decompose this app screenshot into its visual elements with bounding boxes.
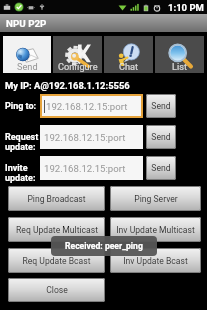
button[interactable]: Ping Server	[110, 186, 201, 211]
button[interactable]: Inv Update Multicast	[110, 217, 201, 242]
staticText: Chat	[119, 61, 139, 72]
staticText: Send	[17, 61, 38, 72]
staticText: List	[172, 61, 187, 72]
button[interactable]: Send	[146, 94, 176, 118]
staticText: Req Update Multicast	[16, 225, 98, 235]
button[interactable]: 192.168.12.15:port	[40, 156, 143, 180]
staticText: Ping Broadcast	[27, 194, 86, 204]
button[interactable]: Req Update Multicast	[8, 217, 105, 242]
button[interactable]: Inv Update Bcast	[110, 248, 201, 273]
staticText: Send	[151, 101, 171, 111]
staticText: Req Update Bcast	[22, 256, 91, 266]
staticText: Received: peer_ping	[65, 241, 143, 251]
staticText: NPU P2P	[6, 18, 47, 29]
button[interactable]: Ping Broadcast	[8, 186, 105, 211]
staticText: 192.168.12.15:port	[46, 101, 128, 112]
staticText: Invite update:	[5, 163, 36, 183]
staticText: Send	[151, 132, 171, 142]
button[interactable]: 192.168.12.15:port	[40, 125, 143, 149]
button[interactable]: Req Update Bcast	[8, 248, 105, 273]
staticText: 192.168.12.15:port	[44, 163, 126, 174]
button[interactable]: Send	[146, 156, 176, 180]
staticText: Request update:	[5, 132, 39, 152]
button[interactable]: Configure tab	[53, 36, 102, 73]
staticText: 1:10 PM	[168, 2, 204, 13]
staticText: My IP: A@192.168.1.12:5556	[5, 80, 130, 91]
staticText: Ping Server	[134, 194, 178, 204]
staticText: Send	[151, 163, 171, 173]
button[interactable]: Send tab	[3, 36, 51, 73]
staticText: Inv Update Bcast	[123, 256, 188, 266]
button[interactable]: Send	[146, 125, 176, 149]
button[interactable]: Close	[8, 278, 105, 302]
button[interactable]: Chat tab	[104, 36, 153, 73]
staticText: 192.168.12.15:port	[44, 132, 126, 143]
staticText: Configure	[58, 61, 98, 72]
button[interactable]: List tab	[155, 36, 204, 73]
staticText: Inv Update Multicast	[116, 225, 195, 235]
button[interactable]: 192.168.12.15:port	[42, 96, 141, 116]
staticText: Close	[46, 285, 68, 295]
staticText: Ping to:	[5, 101, 37, 112]
